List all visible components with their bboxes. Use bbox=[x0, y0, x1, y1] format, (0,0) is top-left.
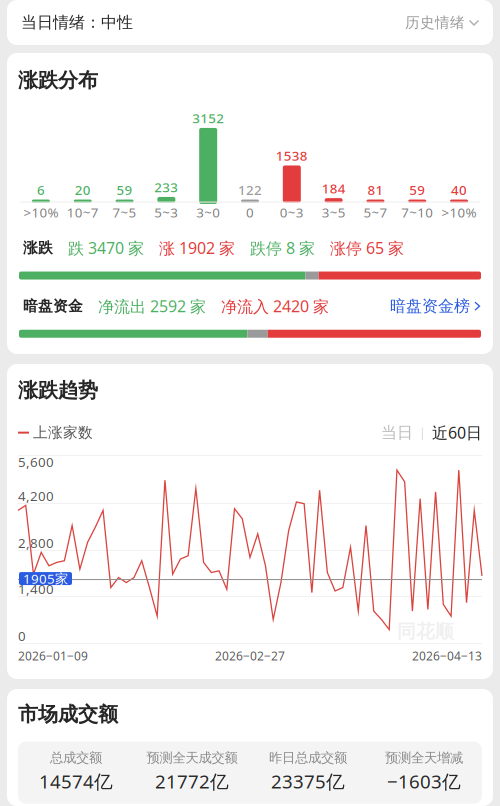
staticText: 7~10 bbox=[401, 204, 433, 221]
staticText: 总成交额 bbox=[50, 750, 102, 766]
staticText: 5~3 bbox=[154, 204, 178, 221]
staticText: 5,600 bbox=[18, 453, 54, 471]
button[interactable]: 暗盘资金榜 bbox=[390, 296, 482, 316]
staticText: 涨跌 bbox=[23, 239, 53, 257]
staticText: 预测全天成交额 bbox=[146, 750, 237, 766]
staticText: 21772亿 bbox=[155, 769, 229, 794]
staticText: 233 bbox=[154, 178, 178, 196]
staticText: 净流出 2592 家 bbox=[83, 295, 206, 317]
staticText: 市场成交额 bbox=[18, 702, 118, 727]
staticText: 184 bbox=[322, 179, 346, 197]
staticText: 1,400 bbox=[18, 580, 54, 598]
staticText: 4,200 bbox=[18, 487, 54, 505]
staticText: 涨停 65 家 bbox=[315, 237, 404, 258]
staticText: 10~7 bbox=[67, 204, 99, 221]
staticText: 1538 bbox=[276, 147, 308, 164]
staticText: 14574亿 bbox=[39, 769, 113, 794]
staticText: >10% bbox=[442, 204, 477, 221]
staticText: 0 bbox=[18, 627, 26, 645]
staticText: 同花顺 bbox=[397, 620, 454, 643]
staticText: 59 bbox=[116, 181, 132, 199]
staticText: 涨 1902 家 bbox=[144, 237, 235, 258]
staticText: 暗盘资金榜 bbox=[390, 296, 470, 316]
staticText: 预测全天增减 bbox=[385, 750, 463, 766]
staticText: 6 bbox=[37, 181, 45, 199]
staticText: 3~0 bbox=[196, 204, 220, 221]
staticText: −1603亿 bbox=[387, 769, 461, 794]
staticText: 7~5 bbox=[112, 204, 136, 221]
staticText: >10% bbox=[23, 204, 58, 221]
staticText: 跌停 8 家 bbox=[235, 237, 315, 258]
staticText: 近60日 bbox=[432, 422, 482, 443]
staticText: 昨日总成交额 bbox=[269, 750, 347, 766]
staticText: 暗盘资金 bbox=[23, 297, 83, 315]
staticText: 2,800 bbox=[18, 534, 54, 552]
staticText: 当日 bbox=[381, 423, 413, 442]
staticText: 122 bbox=[238, 181, 262, 199]
button[interactable]: 近60日 bbox=[432, 422, 482, 443]
staticText: 40 bbox=[451, 181, 467, 199]
staticText: 5~7 bbox=[363, 204, 387, 221]
staticText: 23375亿 bbox=[271, 769, 345, 794]
staticText: 2026−04−13 bbox=[412, 648, 482, 664]
staticText: 跌 3470 家 bbox=[53, 237, 144, 258]
button[interactable]: 当日 bbox=[381, 423, 413, 442]
button[interactable]: 当日情绪：中性 bbox=[7, 0, 493, 45]
staticText: 59 bbox=[409, 181, 425, 199]
staticText: 0 bbox=[246, 204, 254, 221]
staticText: 历史情绪 bbox=[405, 13, 465, 31]
staticText: 当日情绪：中性 bbox=[21, 13, 133, 32]
staticText: 2026−02−27 bbox=[215, 648, 285, 664]
staticText: 3~5 bbox=[322, 204, 346, 221]
staticText: 涨跌趋势 bbox=[18, 378, 98, 403]
staticText: 81 bbox=[367, 181, 383, 199]
staticText: 1905家 bbox=[23, 570, 68, 587]
staticText: 净流入 2420 家 bbox=[206, 295, 329, 317]
staticText: 20 bbox=[75, 181, 91, 199]
staticText: 3152 bbox=[192, 109, 224, 127]
staticText: 涨跌分布 bbox=[18, 68, 98, 93]
staticText: 2026−01−09 bbox=[18, 648, 88, 664]
staticText: | bbox=[413, 425, 432, 441]
staticText: 0~3 bbox=[280, 204, 304, 221]
staticText: 上涨家数 bbox=[29, 424, 93, 442]
